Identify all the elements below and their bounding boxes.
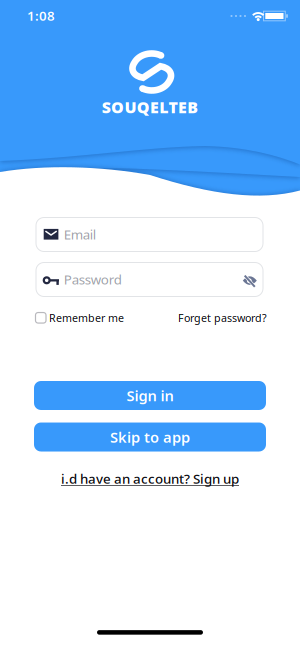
staticText: Password — [64, 270, 122, 288]
staticText: Skip to app — [110, 427, 190, 447]
button[interactable]: Sign in — [34, 381, 266, 410]
staticText: SOUQELTEB — [102, 96, 198, 118]
button[interactable]: i.d have an account? Sign up — [61, 470, 239, 487]
button[interactable]: Show password — [237, 268, 261, 292]
button[interactable]: Forget password? — [137, 309, 267, 327]
staticText: Forget password? — [178, 311, 267, 325]
button[interactable]: Remember me — [35, 309, 165, 327]
staticText: i.d have an account? Sign up — [61, 470, 239, 487]
staticText: Sign in — [126, 386, 173, 405]
staticText: Remember me — [49, 311, 124, 325]
button[interactable]: Skip to app — [34, 422, 266, 451]
staticText: 1:08 — [27, 7, 55, 24]
staticText: Email — [64, 225, 96, 243]
